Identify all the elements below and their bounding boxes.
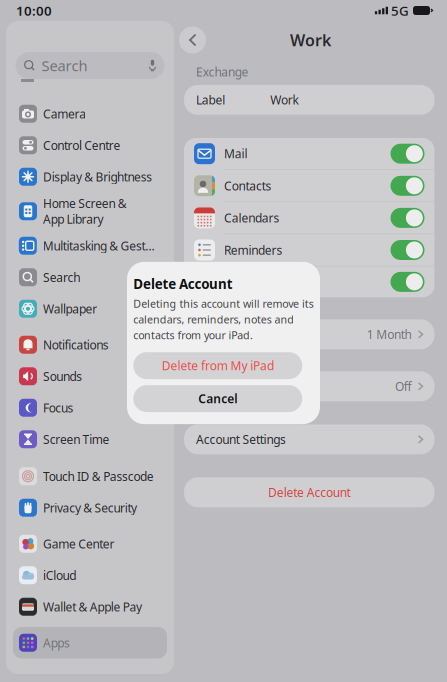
button[interactable]: Delete Account — [184, 477, 434, 507]
staticText: 5G — [391, 2, 409, 19]
button[interactable]: Mail — [390, 144, 424, 164]
staticText: S/MIME — [196, 378, 239, 394]
button[interactable]: Screen Time — [13, 423, 167, 455]
staticText: Game Center — [43, 536, 114, 552]
staticText: Work — [270, 92, 299, 108]
button[interactable]: Multitasking & Gestures — [13, 230, 167, 261]
button[interactable]: Home Screen & — [13, 192, 167, 230]
staticText: Screen Time — [43, 431, 109, 447]
staticText: Contacts — [224, 178, 272, 194]
staticText: Label — [196, 92, 225, 108]
button[interactable]: Notifications — [13, 329, 167, 360]
button[interactable]: Sounds — [13, 360, 167, 392]
staticText: Apps — [43, 635, 70, 651]
button[interactable]: Game Center — [13, 528, 167, 559]
staticText: 10:00 — [16, 2, 52, 19]
button[interactable]: Account Settings — [184, 424, 434, 454]
button[interactable]: Reminders — [390, 240, 424, 260]
staticText: App Library — [43, 211, 103, 227]
button[interactable]: iCloud — [13, 559, 167, 591]
staticText: Wallet & Apple Pay — [43, 599, 142, 615]
button[interactable]: Calendars — [390, 208, 424, 228]
button[interactable]: Touch ID & Passcode — [13, 460, 167, 492]
staticText: Delete from My iPad — [162, 358, 274, 373]
staticText: Sounds — [43, 368, 82, 384]
staticText: Delete Account — [133, 275, 233, 293]
staticText: Account Settings — [196, 431, 286, 447]
staticText: Camera — [43, 106, 86, 122]
button[interactable]: Camera — [13, 98, 167, 129]
button[interactable]: Back — [179, 26, 206, 53]
staticText: Calendars — [224, 210, 279, 226]
button[interactable]: Wallpaper — [13, 293, 167, 324]
button[interactable]: Control Centre — [13, 129, 167, 161]
staticText: Mail Days to Sync — [196, 326, 291, 342]
staticText: Multitasking & Gestures — [43, 238, 159, 254]
staticText: Exchange — [196, 64, 249, 80]
staticText: Display & Brightness — [43, 169, 152, 185]
button[interactable]: Cancel — [133, 385, 302, 412]
staticText: Delete Account — [268, 484, 350, 500]
staticText: contacts from your iPad. — [133, 328, 253, 342]
button[interactable]: Mail Days to Sync — [184, 319, 434, 349]
staticText: calendars, reminders, notes and — [133, 312, 294, 326]
staticText: Notes — [224, 274, 256, 290]
staticText: Privacy & Security — [43, 500, 137, 516]
button[interactable]: Wallet & Apple Pay — [13, 591, 167, 622]
button[interactable]: Contacts — [390, 176, 424, 196]
button[interactable]: Display & Brightness — [13, 161, 167, 192]
button[interactable]: Notes — [390, 272, 424, 292]
staticText: Control Centre — [43, 137, 120, 153]
staticText: Focus — [43, 400, 74, 416]
staticText: Deleting this account will remove its — [133, 297, 314, 311]
staticText: Cancel — [198, 391, 237, 406]
button[interactable]: Privacy & Security — [13, 492, 167, 523]
staticText: Search — [43, 269, 80, 285]
staticText: Mail — [224, 146, 247, 162]
staticText: 1 Month — [367, 326, 412, 342]
button[interactable]: Delete from My iPad — [133, 352, 302, 379]
staticText: Touch ID & Passcode — [43, 468, 154, 484]
staticText: iCloud — [43, 567, 76, 583]
button[interactable]: Search — [13, 261, 167, 293]
staticText: Work — [290, 29, 331, 51]
staticText: Reminders — [224, 242, 282, 258]
button[interactable]: Focus — [13, 392, 167, 423]
staticText: Off — [395, 378, 412, 394]
staticText: Notifications — [43, 337, 109, 353]
staticText: Search — [41, 56, 87, 75]
button[interactable]: Apps — [13, 627, 167, 658]
button[interactable]: S/MIME — [184, 371, 434, 401]
staticText: Home Screen & — [43, 195, 127, 211]
staticText: Wallpaper — [43, 301, 97, 317]
